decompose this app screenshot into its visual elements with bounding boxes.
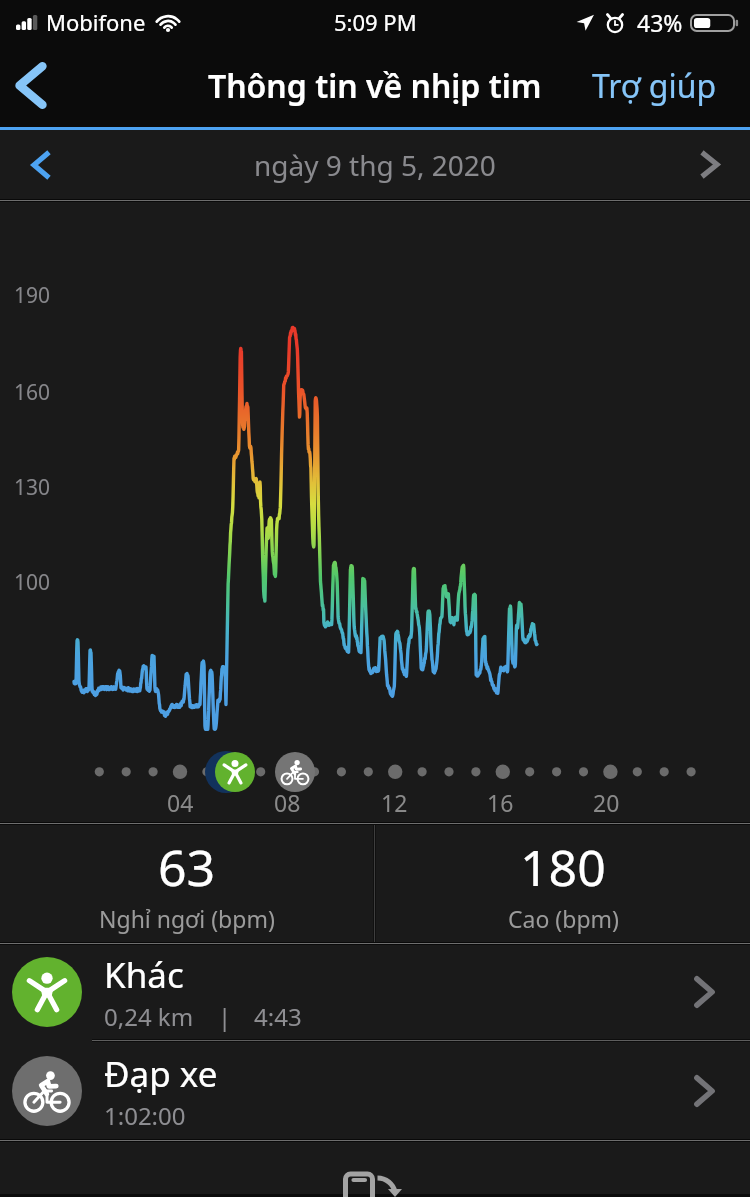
staticText: 5:09 PM (334, 7, 417, 37)
button[interactable]: 180 (376, 825, 750, 942)
button[interactable]: Cycling activity (275, 752, 315, 792)
staticText: 04 (167, 787, 194, 818)
staticText: 4:43 (254, 1000, 302, 1033)
staticText: 100 (14, 568, 51, 597)
staticText: 16 (487, 787, 514, 818)
staticText: 130 (14, 473, 51, 502)
staticText: 180 (520, 833, 606, 901)
button[interactable]: Previous day (0, 130, 80, 199)
button[interactable]: Đạp xe (0, 1042, 750, 1142)
staticText: 160 (14, 378, 51, 407)
staticText: 63 (158, 833, 216, 901)
button[interactable]: 63 (0, 825, 373, 942)
staticText: 1:02:00 (104, 1099, 186, 1132)
staticText: Mobifone (46, 7, 146, 37)
button[interactable]: Trợ giúp (570, 44, 750, 127)
button[interactable]: Back (0, 44, 62, 127)
staticText: 0,24 km (104, 1000, 194, 1033)
staticText: | (218, 1000, 232, 1033)
staticText: 12 (381, 787, 408, 818)
button[interactable]: Khác (0, 945, 750, 1042)
staticText: Khác (104, 951, 184, 999)
staticText: ngày 9 thg 5, 2020 (254, 146, 496, 184)
staticText: 43% (637, 7, 683, 38)
staticText: Nghỉ ngơi (bpm) (99, 903, 275, 934)
staticText: Thông tin về nhịp tim (208, 64, 542, 108)
button[interactable]: Next day (670, 130, 750, 199)
staticText: Đạp xe (104, 1050, 218, 1098)
staticText: 08 (274, 787, 301, 818)
staticText: 20 (593, 787, 620, 818)
button[interactable]: Other activity (215, 752, 255, 792)
staticText: Cao (bpm) (508, 903, 619, 934)
staticText: 190 (14, 281, 51, 310)
staticText: Trợ giúp (592, 64, 717, 108)
